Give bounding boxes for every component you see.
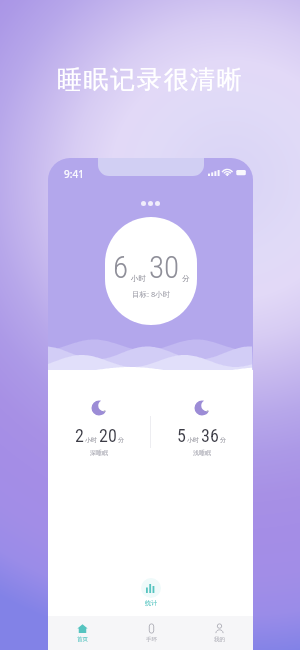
staticText: 目标: 8小时: [132, 289, 171, 299]
button[interactable]: 我的: [185, 616, 253, 650]
staticText: 9:41: [64, 167, 84, 181]
staticText: 分: [220, 436, 226, 444]
staticText: 6: [113, 249, 129, 285]
staticText: 小时: [85, 436, 97, 444]
staticText: 分: [182, 274, 190, 283]
staticText: 分: [118, 436, 124, 444]
button[interactable]: 首页: [48, 616, 117, 650]
staticText: 首页: [77, 636, 88, 643]
staticText: 我的: [214, 636, 225, 643]
staticText: 小时: [131, 274, 146, 283]
staticText: 30: [149, 249, 180, 285]
staticText: 统计: [145, 599, 157, 607]
staticText: 手环: [146, 636, 157, 643]
staticText: 浅睡眠: [193, 449, 211, 457]
staticText: 2: [75, 425, 84, 446]
staticText: 20: [99, 425, 117, 446]
staticText: 5: [177, 425, 186, 446]
staticText: 深睡眠: [90, 449, 108, 457]
staticText: 小时: [187, 436, 199, 444]
button[interactable]: 手环: [117, 616, 185, 650]
button[interactable]: 2: [48, 400, 150, 457]
button[interactable]: 5: [150, 400, 253, 457]
button[interactable]: 统计: [141, 578, 161, 607]
staticText: 睡眠记录很清晰: [57, 64, 244, 95]
staticText: 36: [201, 425, 219, 446]
